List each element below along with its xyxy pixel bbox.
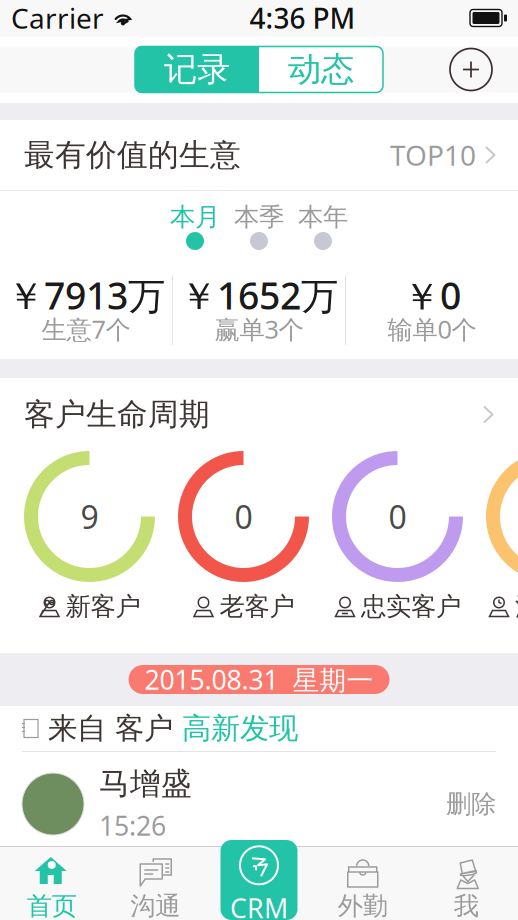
- staticText: ￥7913万: [7, 270, 165, 320]
- button[interactable]: 本月: [163, 201, 227, 251]
- staticText: 客户生命周期: [24, 396, 210, 433]
- staticText: 2015.08.31 星期一: [144, 662, 373, 697]
- staticText: 赢单3个: [214, 312, 303, 346]
- staticText: 本月: [170, 201, 220, 232]
- staticText: 15:26: [99, 808, 166, 843]
- staticText: 本季: [234, 201, 284, 232]
- staticText: 忠实客户: [361, 591, 461, 622]
- staticText: ￥0: [403, 270, 461, 320]
- button[interactable]: 沟通: [103, 847, 207, 920]
- button[interactable]: CRM: [220, 840, 297, 920]
- staticText: 0: [234, 495, 252, 538]
- staticText: 本年: [298, 201, 348, 232]
- staticText: Carrier: [11, 0, 104, 37]
- staticText: 首页: [27, 890, 77, 920]
- staticText: 来自 客户: [48, 710, 173, 746]
- button[interactable]: 动态: [259, 46, 383, 92]
- staticText: 流失客户: [515, 591, 518, 622]
- staticText: 新客户: [65, 591, 140, 622]
- staticText: 9: [80, 495, 98, 538]
- staticText: 0: [388, 495, 406, 538]
- staticText: 动态: [288, 49, 354, 90]
- staticText: 4:36 PM: [249, 0, 355, 37]
- staticText: 老客户: [219, 591, 294, 622]
- staticText: TOP10: [390, 136, 476, 174]
- button[interactable]: 外勤: [311, 847, 414, 920]
- staticText: 记录: [164, 49, 230, 90]
- staticText: 高新发现: [182, 710, 298, 746]
- button[interactable]: 本年: [291, 201, 355, 251]
- staticText: 生意7个: [41, 312, 130, 346]
- button[interactable]: 删除: [446, 788, 496, 820]
- button[interactable]: Add: [450, 48, 492, 90]
- staticText: 输单0个: [387, 312, 476, 346]
- button[interactable]: 记录: [135, 46, 259, 92]
- staticText: 我: [454, 890, 479, 920]
- button[interactable]: 本季: [227, 201, 291, 251]
- staticText: 外勤: [338, 890, 388, 920]
- button[interactable]: 首页: [0, 847, 103, 920]
- staticText: 删除: [446, 788, 496, 820]
- button[interactable]: 客户生命周期: [0, 378, 518, 451]
- button[interactable]: 我: [414, 847, 518, 920]
- staticText: 沟通: [130, 890, 180, 920]
- staticText: 马增盛: [99, 765, 192, 803]
- staticText: CRM: [230, 890, 288, 920]
- staticText: 最有价值的生意: [24, 136, 241, 174]
- staticText: ￥1652万: [180, 270, 338, 320]
- button[interactable]: 最有价值的生意: [0, 120, 518, 190]
